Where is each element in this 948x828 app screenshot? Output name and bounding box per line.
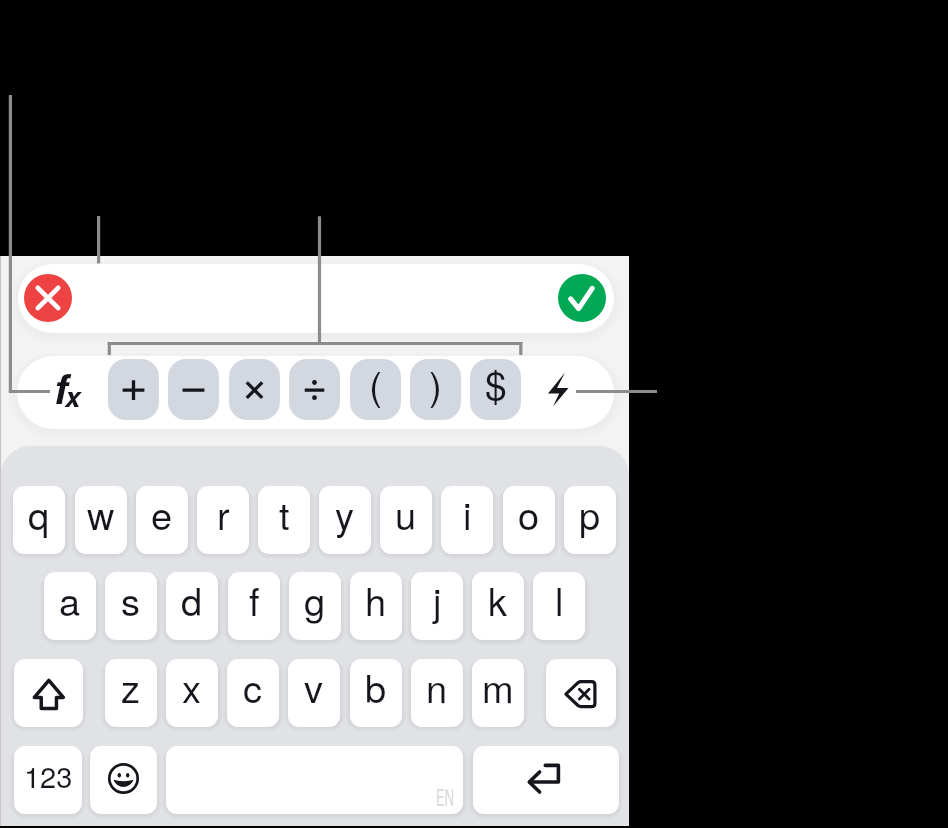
staticText: z [121, 659, 141, 713]
button[interactable]: v [288, 659, 340, 727]
button[interactable]: h [350, 572, 402, 640]
staticText: y [335, 486, 355, 540]
staticText: f [249, 572, 260, 626]
staticText: i [463, 486, 472, 540]
button[interactable]: Space [166, 746, 463, 814]
staticText: p [579, 486, 601, 540]
button[interactable]: r [197, 486, 249, 554]
staticText: k [488, 572, 508, 626]
staticText: q [28, 486, 50, 540]
button[interactable]: u [380, 486, 432, 554]
button[interactable]: i [441, 486, 493, 554]
staticText: j [433, 572, 442, 626]
button[interactable]: Functions [48, 360, 108, 426]
staticText: $ [485, 359, 507, 411]
button[interactable]: e [136, 486, 188, 554]
button[interactable]: f [228, 572, 280, 640]
button[interactable]: d [166, 572, 218, 640]
button[interactable]: Backspace [546, 659, 616, 727]
staticText: e [151, 486, 173, 540]
button[interactable]: Plus [108, 359, 159, 420]
staticText: ( [369, 359, 382, 411]
button[interactable]: g [289, 572, 341, 640]
button[interactable]: Minus [168, 359, 219, 420]
button[interactable]: k [472, 572, 524, 640]
button[interactable]: s [105, 572, 157, 640]
button[interactable]: Dollar sign [470, 359, 521, 420]
staticText: h [365, 572, 387, 626]
staticText: l [555, 572, 564, 626]
button[interactable]: x [166, 659, 218, 727]
staticText: r [217, 486, 230, 540]
staticText: m [482, 659, 514, 713]
staticText: s [121, 572, 141, 626]
staticText: b [365, 659, 387, 713]
staticText: d [181, 572, 203, 626]
button[interactable]: a [44, 572, 96, 640]
staticText: c [243, 659, 263, 713]
button[interactable]: Shift [14, 659, 83, 727]
button[interactable]: y [319, 486, 371, 554]
button[interactable]: Cancel [24, 274, 72, 322]
button[interactable]: t [258, 486, 310, 554]
staticText: g [304, 572, 326, 626]
button[interactable]: q [13, 486, 65, 554]
staticText: n [426, 659, 448, 713]
button[interactable]: Enter [473, 746, 619, 814]
staticText: EN [436, 780, 454, 813]
staticText: f [54, 358, 68, 417]
staticText: t [279, 486, 290, 540]
button[interactable]: Close parenthesis [410, 359, 461, 420]
button[interactable]: c [227, 659, 279, 727]
staticText: u [395, 486, 417, 540]
button[interactable]: 123 [14, 746, 82, 814]
button[interactable]: Divide [289, 359, 340, 420]
button[interactable]: o [503, 486, 555, 554]
button[interactable]: Emoji [90, 746, 157, 814]
button[interactable]: b [350, 659, 402, 727]
staticText: ) [429, 359, 442, 411]
button[interactable]: j [411, 572, 463, 640]
button[interactable]: Accept [558, 274, 606, 322]
button[interactable]: Quick actions [533, 360, 595, 425]
button[interactable]: Open parenthesis [350, 359, 401, 420]
button[interactable]: Multiply [229, 359, 280, 420]
button[interactable]: n [411, 659, 463, 727]
button[interactable]: m [472, 659, 524, 727]
button[interactable]: w [75, 486, 127, 554]
staticText: o [518, 486, 540, 540]
staticText: 123 [24, 755, 73, 797]
staticText: x [182, 659, 202, 713]
staticText: a [59, 572, 81, 626]
button[interactable]: p [564, 486, 616, 554]
staticText: v [304, 659, 324, 713]
staticText: x [65, 376, 81, 416]
staticText: w [87, 486, 115, 540]
button[interactable]: l [533, 572, 585, 640]
button[interactable]: z [105, 659, 157, 727]
